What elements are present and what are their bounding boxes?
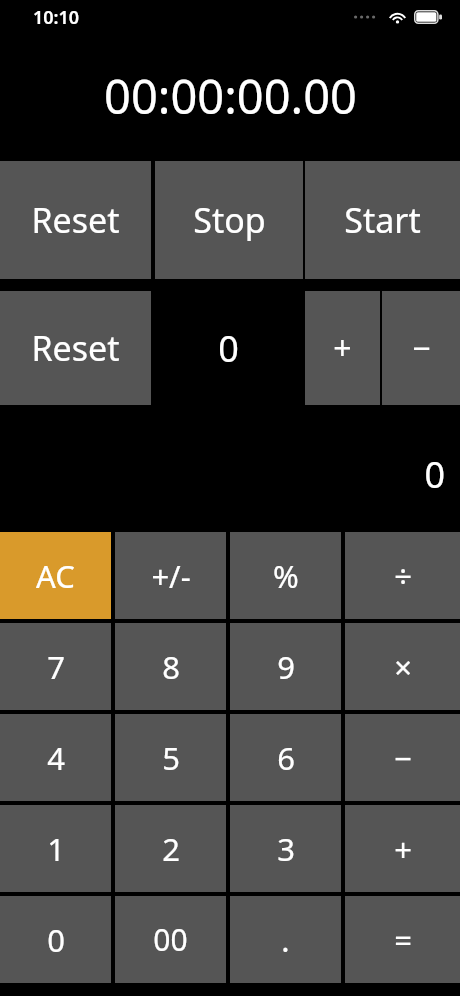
staticText: 2 [162,828,180,870]
button[interactable]: − [345,714,460,801]
staticText: Start [344,197,421,243]
button[interactable]: 2 [115,805,226,892]
button[interactable]: % [230,532,341,619]
staticText: + [333,326,352,370]
staticText: Reset [31,325,120,371]
button[interactable]: 6 [230,714,341,801]
staticText: . [281,919,290,961]
staticText: 0 [47,919,65,961]
staticText: Reset [31,197,120,243]
staticText: % [273,555,299,597]
staticText: 3 [277,828,295,870]
button[interactable]: Reset [0,291,151,405]
button[interactable]: 9 [230,623,341,710]
staticText: Stop [193,197,266,243]
button[interactable]: Stop [155,161,303,279]
button[interactable]: 7 [0,623,111,710]
staticText: − [394,737,412,779]
staticText: 6 [277,737,295,779]
staticText: 10:10 [33,5,80,30]
button[interactable]: Reset [0,161,151,279]
button[interactable]: = [345,896,460,983]
staticText: 00 [153,919,188,960]
button[interactable]: ÷ [345,532,460,619]
staticText: + [394,828,412,870]
button[interactable]: 5 [115,714,226,801]
button[interactable]: AC [0,532,111,619]
button[interactable]: 8 [115,623,226,710]
button[interactable]: 3 [230,805,341,892]
staticText: 0 [424,450,445,499]
staticText: ÷ [394,555,412,597]
staticText: +/- [151,555,191,597]
button[interactable]: . [230,896,341,983]
staticText: 7 [47,646,65,688]
button[interactable]: × [345,623,460,710]
staticText: 4 [47,737,65,779]
staticText: 9 [277,646,295,688]
staticText: 8 [162,646,180,688]
button[interactable]: Start [305,161,460,279]
staticText: AC [36,555,75,597]
button[interactable]: 1 [0,805,111,892]
button[interactable]: Decrement [382,291,460,405]
staticText: 1 [47,828,65,870]
button[interactable]: 0 [0,896,111,983]
staticText: 0 [218,324,239,373]
staticText: = [394,919,412,961]
button[interactable]: Increment [305,291,380,405]
staticText: 5 [162,737,180,779]
staticText: − [412,326,431,370]
button[interactable]: +/- [115,532,226,619]
staticText: 00:00:00.00 [104,64,357,128]
staticText: × [394,646,412,688]
button[interactable]: 4 [0,714,111,801]
button[interactable]: + [345,805,460,892]
button[interactable]: 00 [115,896,226,983]
